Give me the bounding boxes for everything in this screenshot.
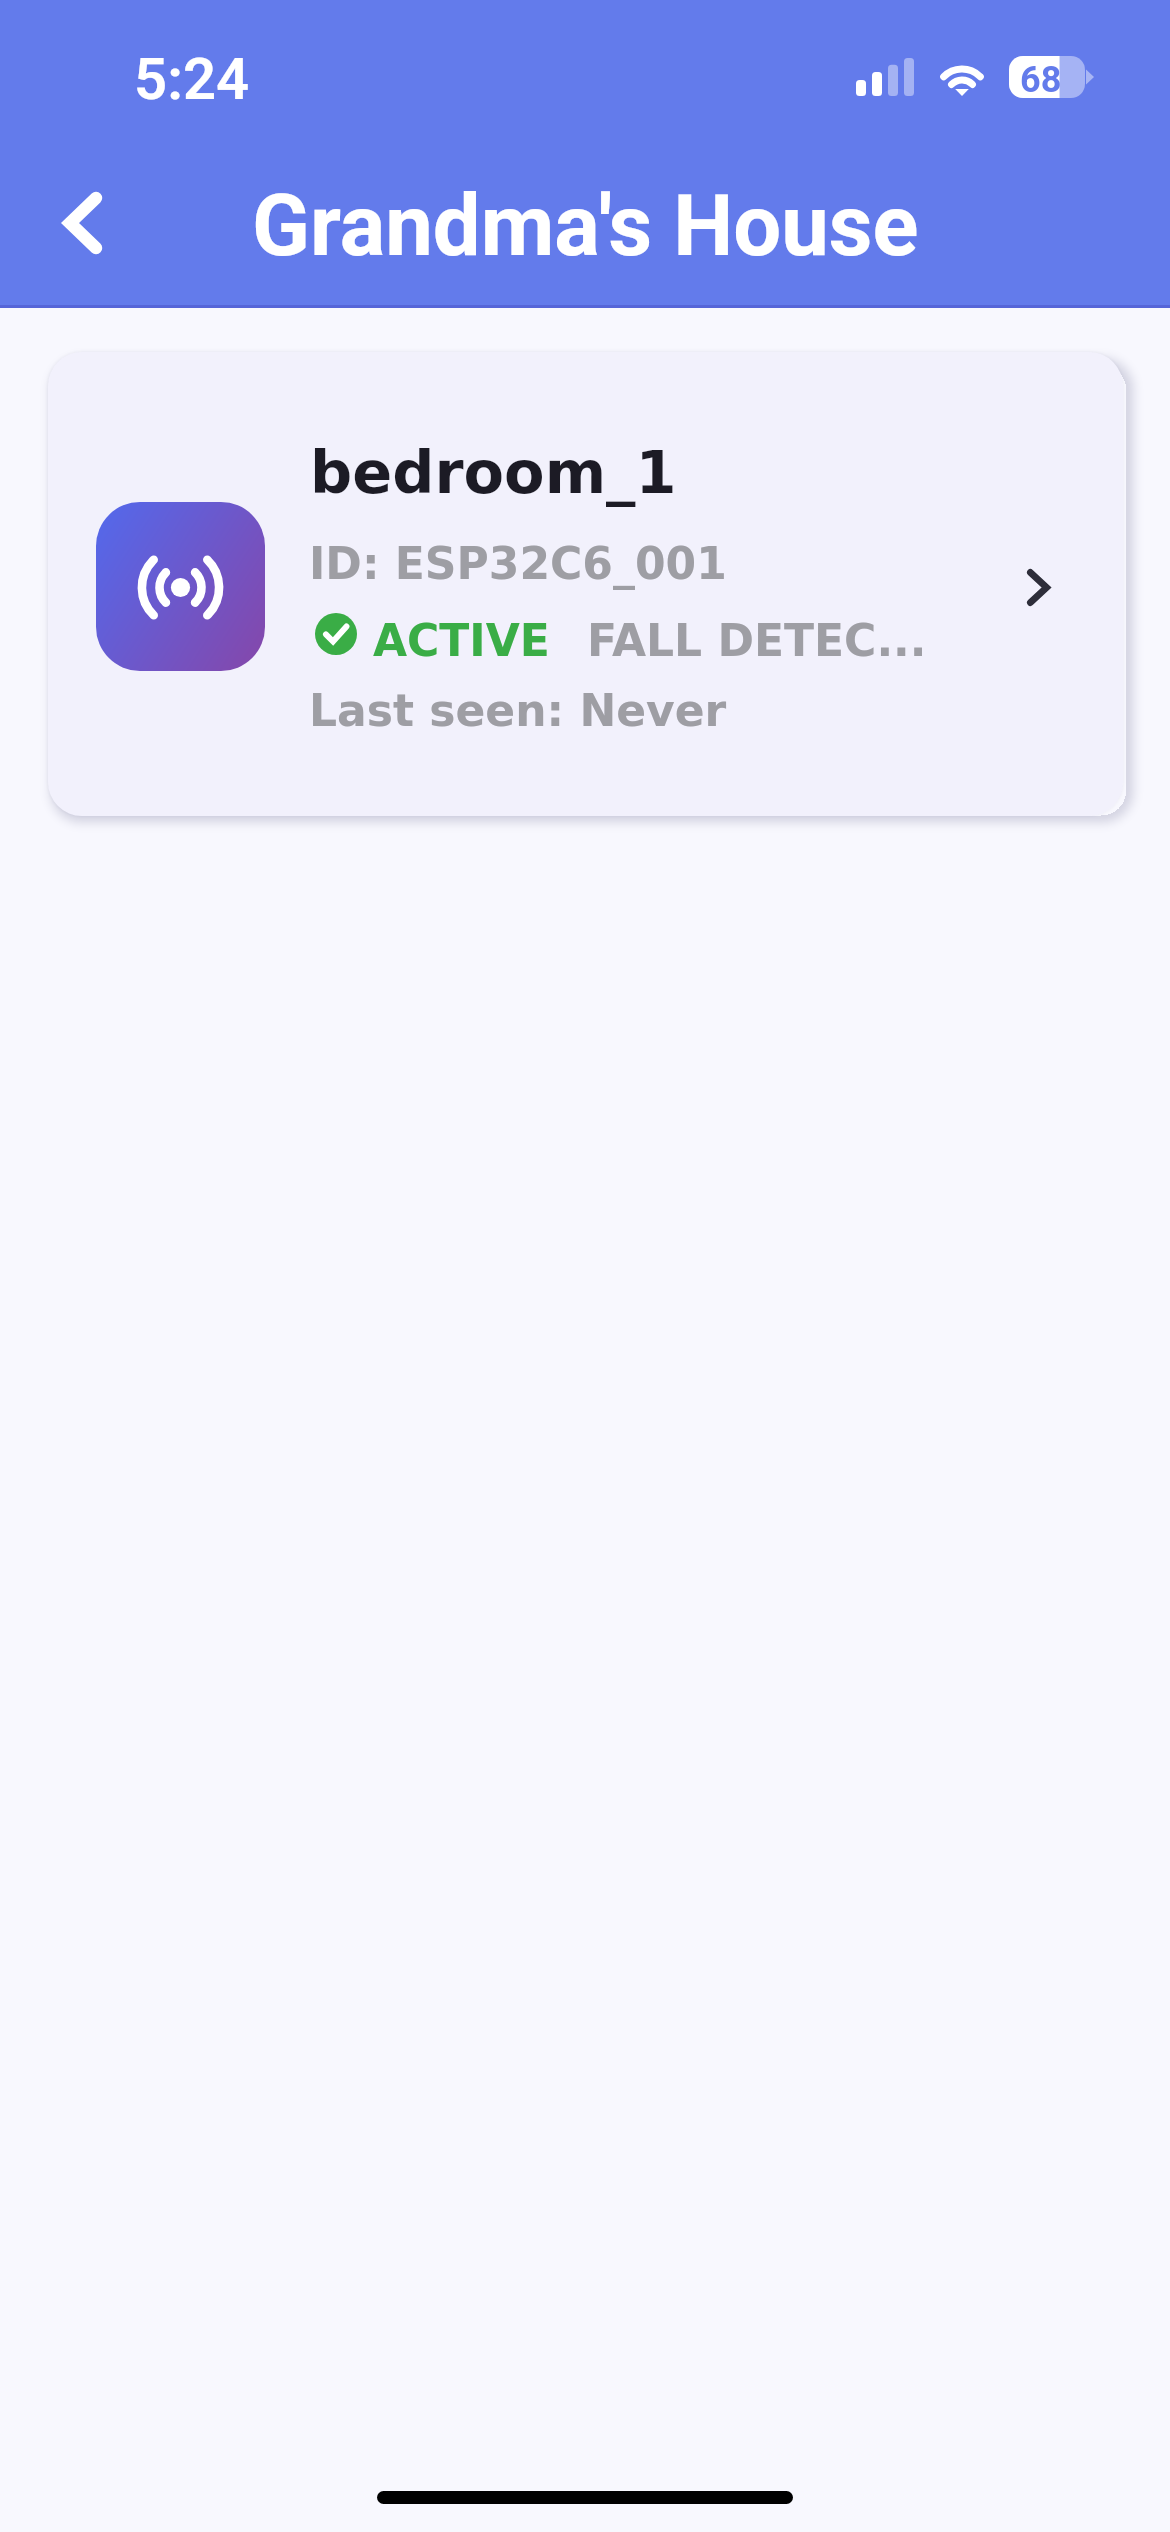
staticText: 68 xyxy=(1020,59,1062,101)
staticText: FALL DETEC... xyxy=(587,615,927,666)
staticText: 5:24 xyxy=(134,45,250,113)
button[interactable]: bedroom_1 xyxy=(48,352,1123,816)
staticText: ACTIVE xyxy=(373,615,550,666)
staticText: bedroom_1 xyxy=(310,438,677,507)
staticText: ID: ESP32C6_001 xyxy=(309,538,727,589)
staticText: Last seen: Never xyxy=(309,685,727,736)
button[interactable]: Back xyxy=(20,160,146,286)
staticText: Grandma's House xyxy=(252,176,919,276)
